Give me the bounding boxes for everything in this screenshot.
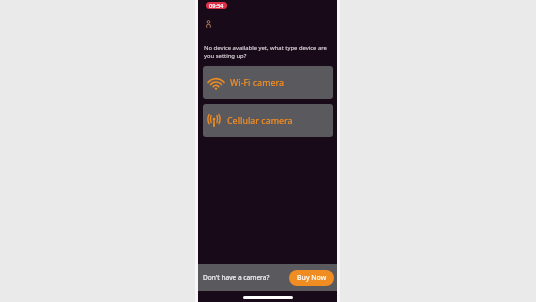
staticText: 09:54 [209, 2, 224, 9]
staticText: Cellular camera [227, 115, 293, 127]
button[interactable]: Buy Now [289, 270, 334, 286]
staticText: Wi-Fi camera [230, 77, 285, 89]
button[interactable]: Account [203, 19, 213, 29]
button[interactable]: Wi-Fi camera [203, 66, 333, 99]
staticText: Buy Now [297, 273, 327, 283]
staticText: No device available yet, what type devic… [204, 44, 330, 60]
staticText: Don't have a camera? [203, 273, 270, 282]
button[interactable]: Cellular camera [203, 104, 333, 137]
